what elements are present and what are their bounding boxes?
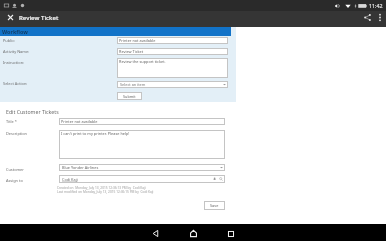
button[interactable]: I can't print to my printer. Please help… [59,130,225,159]
button[interactable]: Home [181,224,205,241]
button[interactable]: Printer not available [59,118,225,125]
button[interactable]: Select an item [117,81,228,88]
button[interactable]: Save [204,201,225,210]
button[interactable]: Codi Kaji [59,175,225,183]
staticText: Blue Yonder Airlines [62,165,99,170]
staticText: Select Action: [3,81,28,86]
button[interactable]: Review the support ticket. [117,58,228,78]
button[interactable]: Blue Yonder Airlines [59,164,225,171]
staticText: Title * [6,119,17,124]
staticText: Customer [6,167,24,172]
staticText: Printer not available [61,119,98,124]
button[interactable]: Review Ticket [117,48,228,55]
staticText: Workflow [2,28,28,35]
staticText: 11:42 [369,2,383,9]
staticText: Select an item [120,82,146,87]
button[interactable]: Printer not available [117,37,228,44]
staticText: Last modified on Monday, July 13, 2015 1… [57,190,154,194]
staticText: Public: [3,38,16,43]
staticText: Save [210,203,219,208]
staticText: Review the support ticket. [119,59,166,64]
button[interactable]: Back [143,224,167,241]
staticText: Printer not available [119,38,156,43]
staticText: Review Ticket [119,49,144,54]
staticText: Edit Customer Tickets [6,108,59,115]
staticText: I can't print to my printer. Please help… [61,131,130,136]
staticText: Instruction: [3,60,25,65]
button[interactable]: Share [362,14,373,25]
staticText: Review Ticket [19,13,59,21]
staticText: Submit [123,94,136,99]
staticText: Assign to [6,178,23,183]
button[interactable]: Submit [117,92,142,100]
staticText: Created on Monday, July 13, 2015 12:36:1… [57,186,146,190]
staticText: Codi Kaji [62,177,78,182]
button[interactable]: More options [374,14,385,25]
button[interactable]: Close [3,12,17,26]
staticText: Activity Name: [3,49,30,54]
staticText: Description [6,131,27,136]
button[interactable]: Recents [219,224,243,241]
